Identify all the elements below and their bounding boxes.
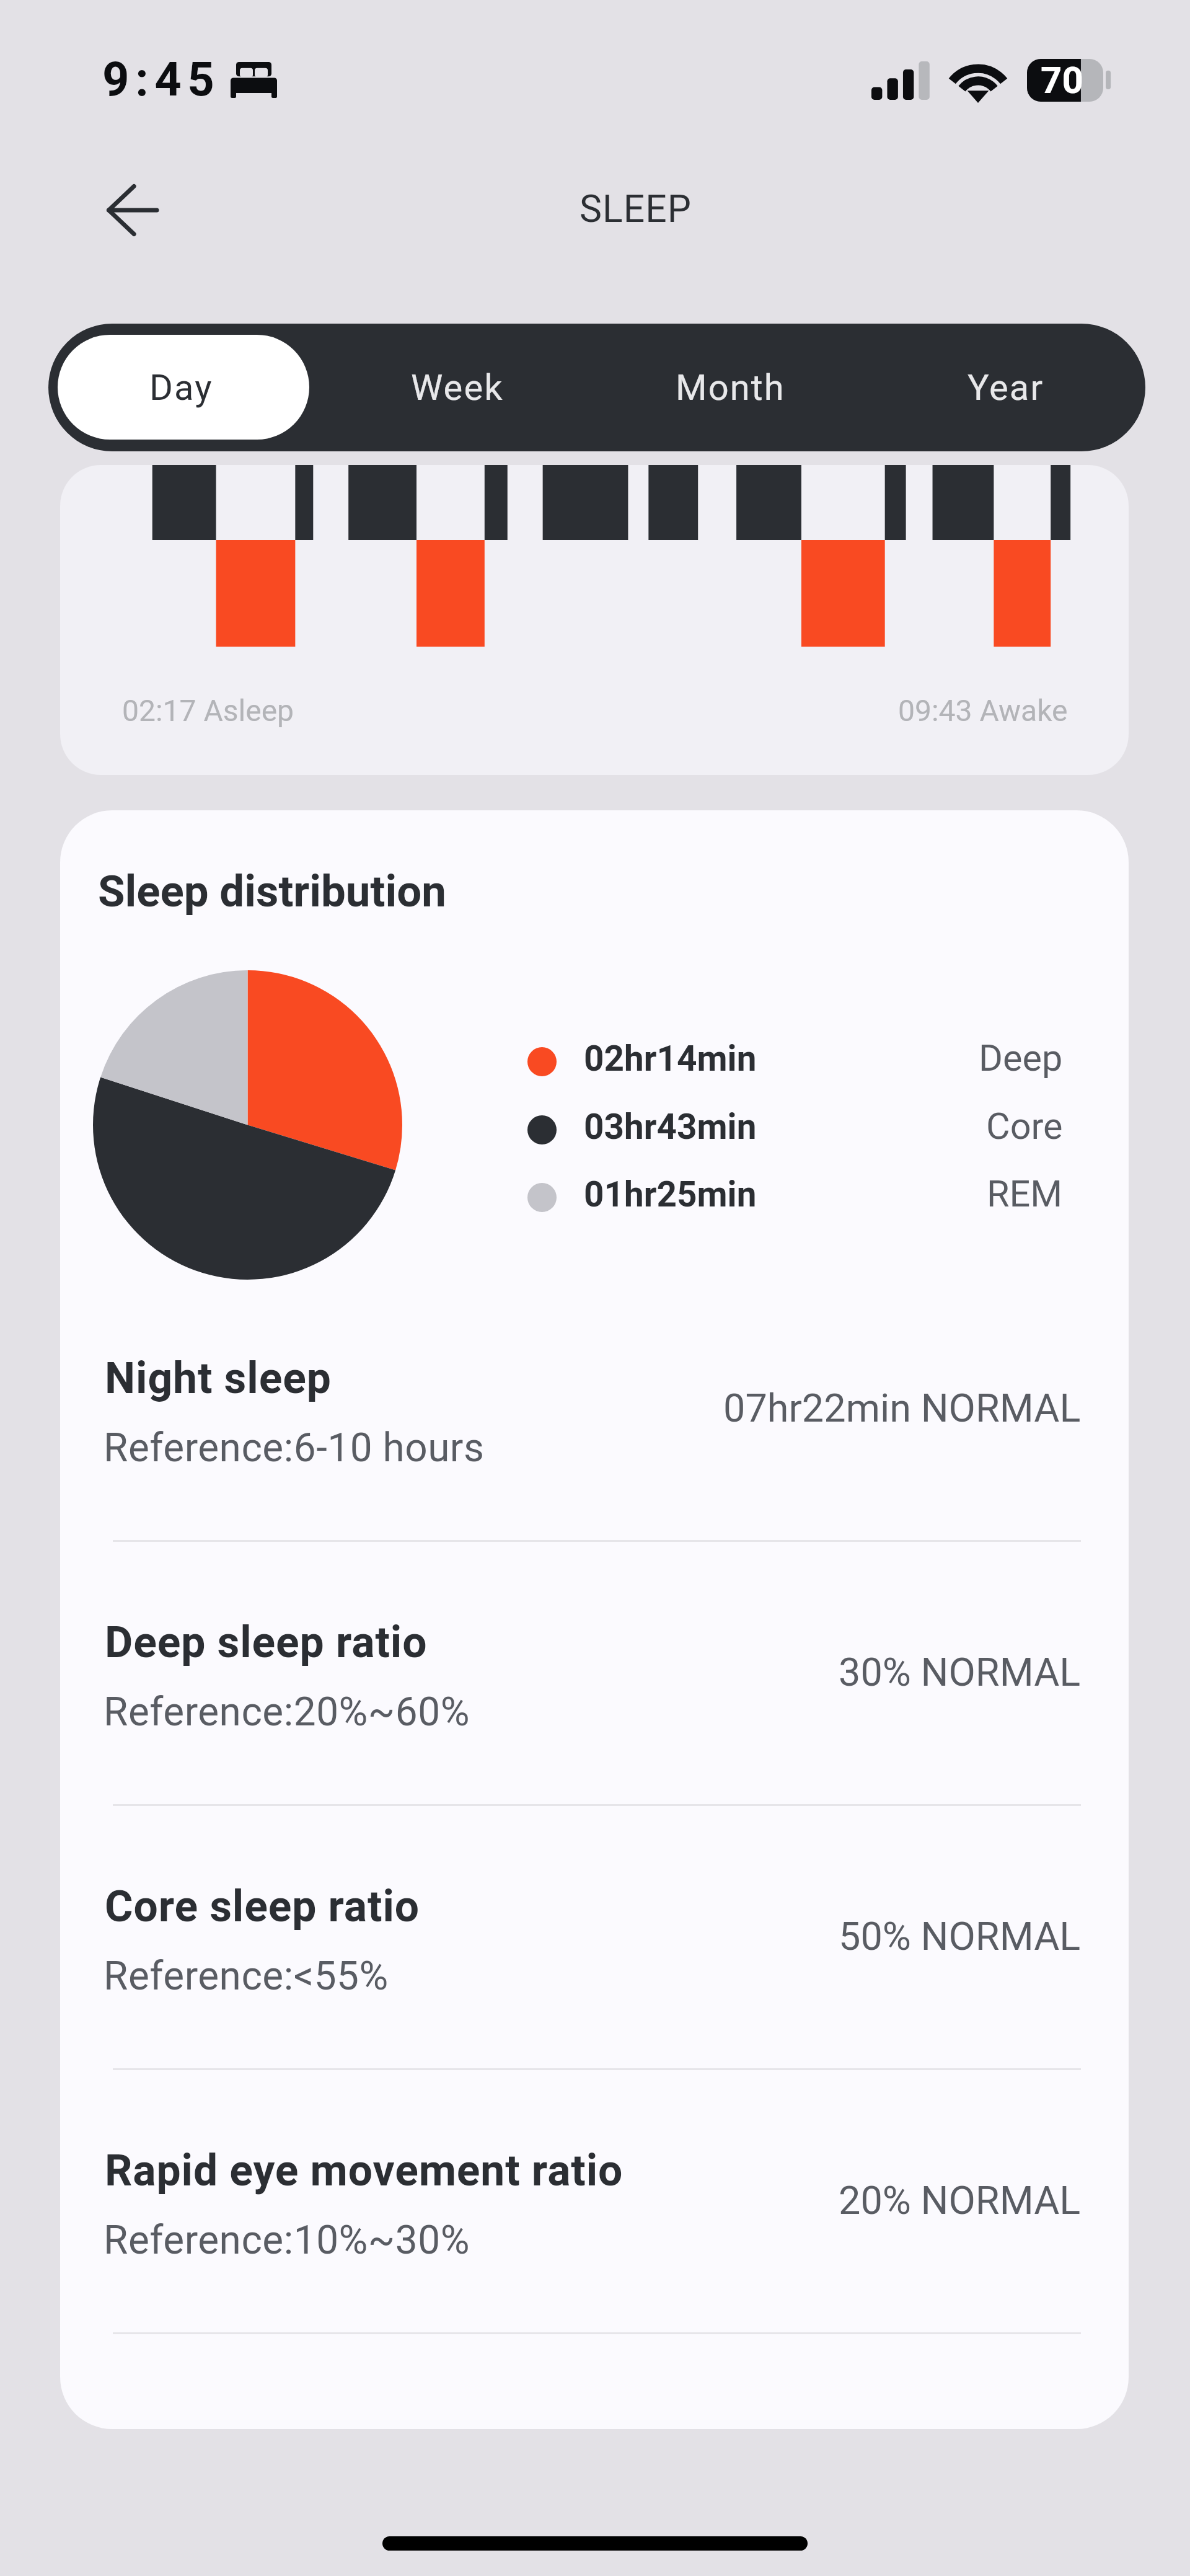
staticText: SLEEP bbox=[580, 187, 692, 231]
button[interactable]: Year bbox=[870, 324, 1144, 451]
button[interactable]: Rapid eye movement ratio bbox=[60, 2145, 1129, 2331]
staticText: 03hr43min bbox=[584, 1106, 757, 1147]
button[interactable]: Month bbox=[596, 324, 870, 451]
staticText: Deep sleep ratio bbox=[105, 1617, 428, 1668]
staticText: Month bbox=[676, 366, 785, 409]
staticText: 02:17 Asleep bbox=[122, 693, 294, 728]
staticText: 70 bbox=[1041, 58, 1083, 101]
staticText: Week bbox=[411, 366, 504, 409]
staticText: REM bbox=[987, 1172, 1063, 1216]
staticText: 09:43 Awake bbox=[898, 693, 1068, 728]
staticText: Night sleep bbox=[105, 1353, 332, 1404]
staticText: Core sleep ratio bbox=[105, 1881, 420, 1932]
button[interactable]: Week bbox=[322, 324, 596, 451]
staticText: Reference:<55% bbox=[104, 1953, 389, 1999]
staticText: Year bbox=[967, 366, 1044, 409]
staticText: Reference:6-10 hours bbox=[104, 1425, 485, 1471]
staticText: 9:45 bbox=[102, 52, 221, 107]
staticText: Reference:20%~60% bbox=[104, 1689, 470, 1735]
staticText: Rapid eye movement ratio bbox=[105, 2145, 624, 2196]
staticText: 30% NORMAL bbox=[839, 1650, 1081, 1696]
staticText: 20% NORMAL bbox=[839, 2178, 1081, 2224]
button[interactable]: Day bbox=[48, 324, 322, 451]
button[interactable]: Night sleep bbox=[60, 1353, 1129, 1539]
staticText: Deep bbox=[979, 1037, 1063, 1080]
staticText: 01hr25min bbox=[584, 1174, 757, 1215]
button[interactable]: Back bbox=[93, 172, 170, 249]
staticText: Core bbox=[986, 1105, 1063, 1148]
button[interactable]: Deep sleep ratio bbox=[60, 1617, 1129, 1803]
staticText: 07hr22min NORMAL bbox=[723, 1386, 1081, 1432]
staticText: 02hr14min bbox=[584, 1038, 757, 1079]
button[interactable]: Core sleep ratio bbox=[60, 1881, 1129, 2067]
staticText: Day bbox=[149, 366, 213, 409]
staticText: Reference:10%~30% bbox=[104, 2217, 470, 2264]
staticText: Sleep distribution bbox=[98, 865, 446, 917]
staticText: 50% NORMAL bbox=[839, 1914, 1081, 1960]
